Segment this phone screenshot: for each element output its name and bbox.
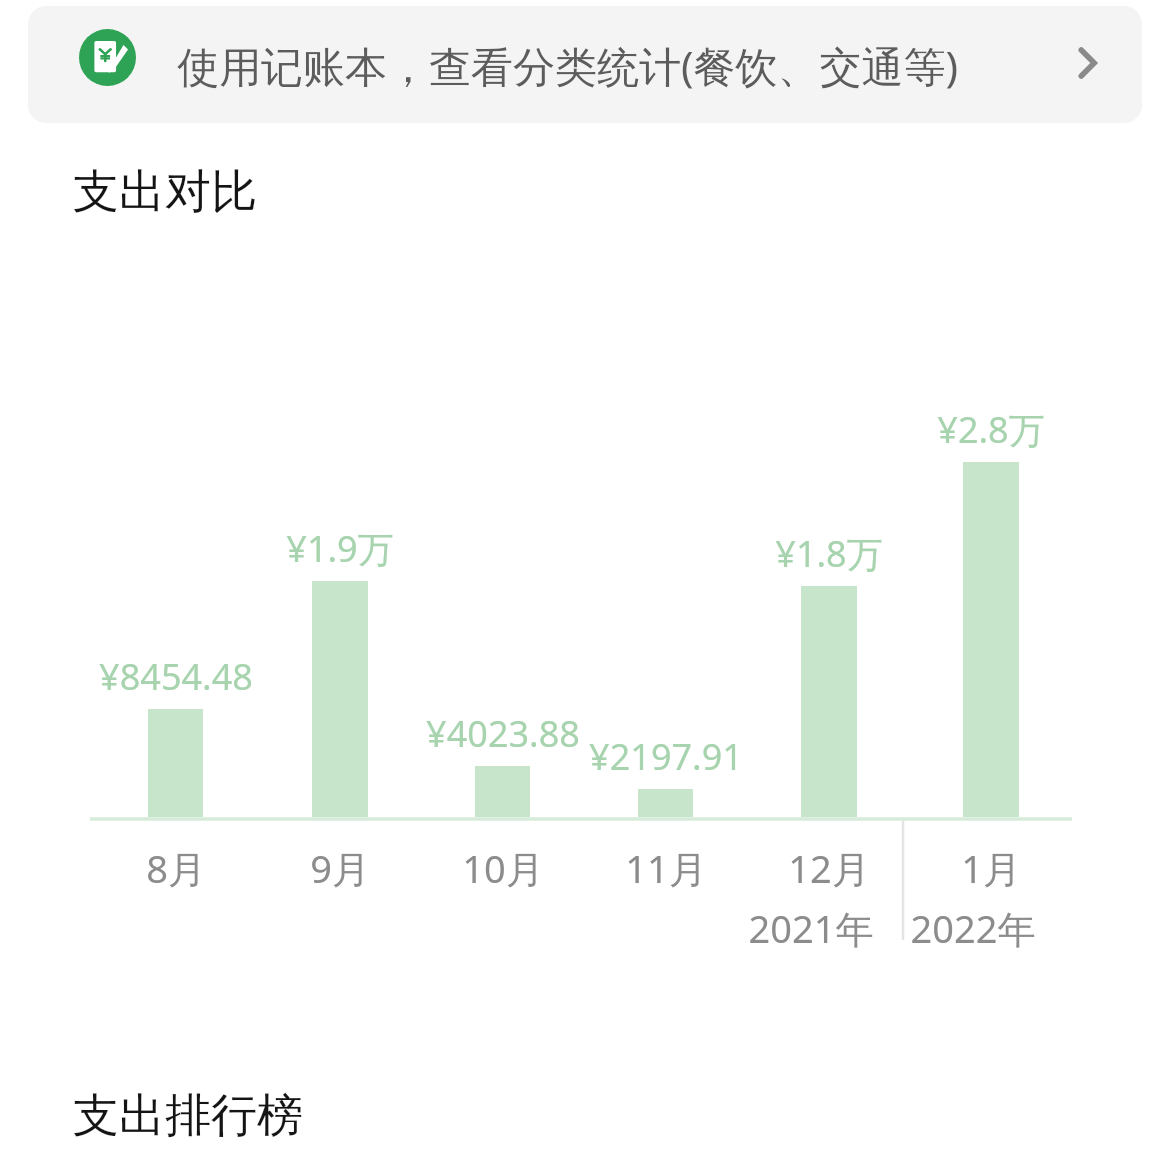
staticText: ¥8454.48 [16,652,336,701]
staticText: 使用记账本，查看分类统计(餐饮、交通等) [177,37,959,94]
staticText: ¥4023.88 [343,709,663,758]
staticText: ¥1.9万 [180,524,500,573]
staticText: ¥2.8万 [831,405,1151,454]
staticText: 8月 [16,842,336,894]
staticText: 11月 [506,842,826,894]
staticText: 2021年 [651,902,971,954]
staticText: 10月 [343,842,663,894]
other: 查看分类统计 [1063,39,1111,87]
staticText: ¥2197.91 [506,732,826,781]
staticText: 支出对比 [73,163,257,221]
button[interactable]: 使用记账本，查看分类统计(餐饮、交通等) [28,6,1142,123]
staticText: 12月 [669,842,989,894]
staticText: 1月 [831,842,1151,894]
staticText: 支出排行榜 [73,1087,303,1145]
staticText: 2022年 [813,902,1133,954]
staticText: 9月 [180,842,500,894]
staticText: ¥1.8万 [669,529,989,578]
